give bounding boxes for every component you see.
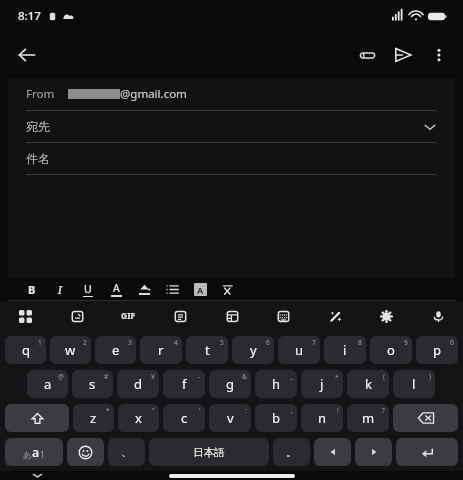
staticText: : (245, 406, 247, 415)
staticText: B (28, 282, 36, 297)
button[interactable]: m (347, 404, 389, 432)
button[interactable]: s (72, 370, 113, 398)
staticText: s (89, 375, 96, 393)
button[interactable]: From (26, 78, 437, 110)
button[interactable]: arrowR (355, 438, 392, 466)
staticText: ' (199, 406, 201, 415)
staticText: f (182, 375, 187, 393)
button[interactable]: mic (425, 303, 451, 329)
staticText: * (106, 406, 110, 415)
button[interactable]: t (186, 336, 228, 364)
staticText: e (112, 341, 120, 359)
button[interactable]: arrowL (314, 438, 351, 466)
button[interactable]: A^ (130, 278, 158, 300)
staticText: U (84, 282, 92, 296)
button[interactable]: shift (5, 404, 69, 432)
button[interactable]: back (393, 404, 458, 432)
button[interactable]: i (324, 336, 366, 364)
staticText: 8 (358, 338, 362, 347)
staticText: z (90, 409, 97, 427)
button[interactable]: h (255, 370, 297, 398)
button[interactable]: comma (108, 438, 145, 466)
button[interactable]: translate (219, 303, 245, 329)
button[interactable]: x (118, 404, 159, 432)
staticText: 日本語 (193, 446, 225, 459)
button[interactable]: clear (214, 278, 242, 300)
button[interactable]: sticker (64, 303, 90, 329)
button[interactable]: j (301, 370, 343, 398)
button[interactable]: period (273, 438, 310, 466)
button[interactable]: A_ (102, 278, 130, 300)
staticText: @ (58, 372, 64, 381)
button[interactable]: g (209, 370, 251, 398)
button[interactable]: k (347, 370, 389, 398)
staticText: a (32, 444, 40, 461)
button[interactable]: Hide keyboard (26, 471, 48, 480)
button[interactable]: v (209, 404, 251, 432)
staticText: v (227, 409, 234, 427)
button[interactable]: 宛先 (26, 111, 437, 142)
staticText: & (242, 372, 247, 381)
staticText: o (387, 341, 395, 359)
button[interactable]: bg (186, 278, 214, 300)
button[interactable]: gif (115, 303, 141, 329)
button[interactable]: apps (12, 303, 38, 329)
button[interactable]: Attach file (349, 37, 385, 73)
staticText: 1 (40, 449, 45, 461)
button[interactable]: z (73, 404, 114, 432)
button[interactable]: w (50, 336, 91, 364)
staticText: 2 (83, 338, 87, 347)
button[interactable]: ai (322, 303, 348, 329)
button[interactable]: enter (396, 438, 458, 466)
button[interactable]: y (232, 336, 274, 364)
staticText: 7 (312, 338, 316, 347)
button[interactable]: I (46, 278, 74, 300)
staticText: 、 (121, 445, 132, 459)
staticText: 4 (174, 338, 178, 347)
staticText: r (158, 341, 164, 359)
button[interactable]: Back (8, 36, 46, 74)
staticText: 。 (286, 445, 297, 459)
button[interactable]: keyboard (270, 303, 296, 329)
button[interactable]: 日本語 (149, 438, 269, 466)
staticText: p (433, 341, 441, 359)
button[interactable]: d (117, 370, 159, 398)
button[interactable]: o (370, 336, 412, 364)
staticText: a (44, 375, 52, 393)
staticText: b (272, 409, 280, 427)
button[interactable]: p (416, 336, 458, 364)
button[interactable]: q (5, 336, 46, 364)
staticText: n (318, 409, 327, 427)
button[interactable]: U (74, 278, 102, 300)
button[interactable]: emoji (67, 438, 104, 466)
staticText: A (113, 281, 120, 295)
staticText: A (197, 284, 204, 296)
staticText: # (104, 372, 109, 381)
button[interactable]: B (18, 278, 46, 300)
staticText: ¥ (151, 372, 155, 381)
staticText: g (226, 375, 234, 393)
button[interactable]: e (95, 336, 136, 364)
button[interactable]: c (163, 404, 205, 432)
button[interactable]: langmode (5, 438, 63, 466)
button[interactable]: a (27, 370, 68, 398)
button[interactable]: settings (373, 303, 399, 329)
staticText: x (135, 409, 142, 427)
staticText: 件名 (26, 151, 50, 166)
button[interactable]: u (278, 336, 320, 364)
button[interactable]: Send (385, 37, 421, 73)
button[interactable]: More options (421, 37, 457, 73)
button[interactable]: l (393, 370, 435, 398)
button[interactable]: clipboard (167, 303, 193, 329)
staticText: 0 (450, 338, 454, 347)
button[interactable]: n (301, 404, 343, 432)
staticText: l (412, 375, 416, 393)
button[interactable]: b (255, 404, 297, 432)
button[interactable]: f (163, 370, 205, 398)
button[interactable]: r (140, 336, 182, 364)
staticText: " (152, 406, 155, 415)
button[interactable]: 件名 (26, 143, 437, 174)
button[interactable]: list (158, 278, 186, 300)
staticText: i (343, 341, 347, 359)
